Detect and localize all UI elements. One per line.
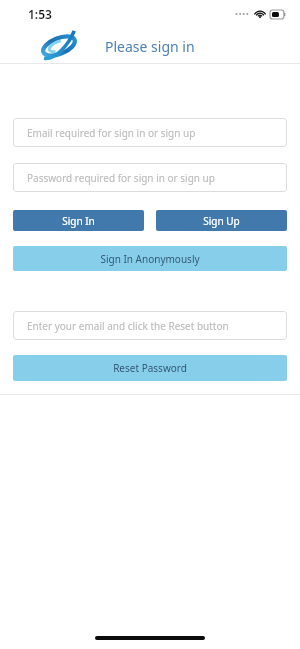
staticText: Sign In: [62, 214, 95, 228]
button[interactable]: Password required for sign in or sign up: [13, 163, 287, 192]
staticText: Please sign in: [105, 37, 195, 56]
staticText: Password required for sign in or sign up: [27, 171, 215, 185]
staticText: Enter your email and click the Reset but…: [27, 319, 229, 333]
staticText: Sign Up: [203, 214, 240, 228]
button[interactable]: Sign In: [13, 210, 144, 231]
staticText: Reset Password: [113, 361, 187, 375]
staticText: Email required for sign in or sign up: [27, 126, 196, 140]
other: App logo: [38, 33, 80, 59]
button[interactable]: Email required for sign in or sign up: [13, 118, 287, 147]
button[interactable]: Sign Up: [156, 210, 287, 231]
staticText: Sign In Anonymously: [100, 252, 200, 266]
button[interactable]: Enter your email and click the Reset but…: [13, 311, 287, 340]
button[interactable]: Sign In Anonymously: [13, 246, 287, 271]
staticText: 1:53: [28, 6, 52, 22]
button[interactable]: Reset Password: [13, 355, 287, 381]
